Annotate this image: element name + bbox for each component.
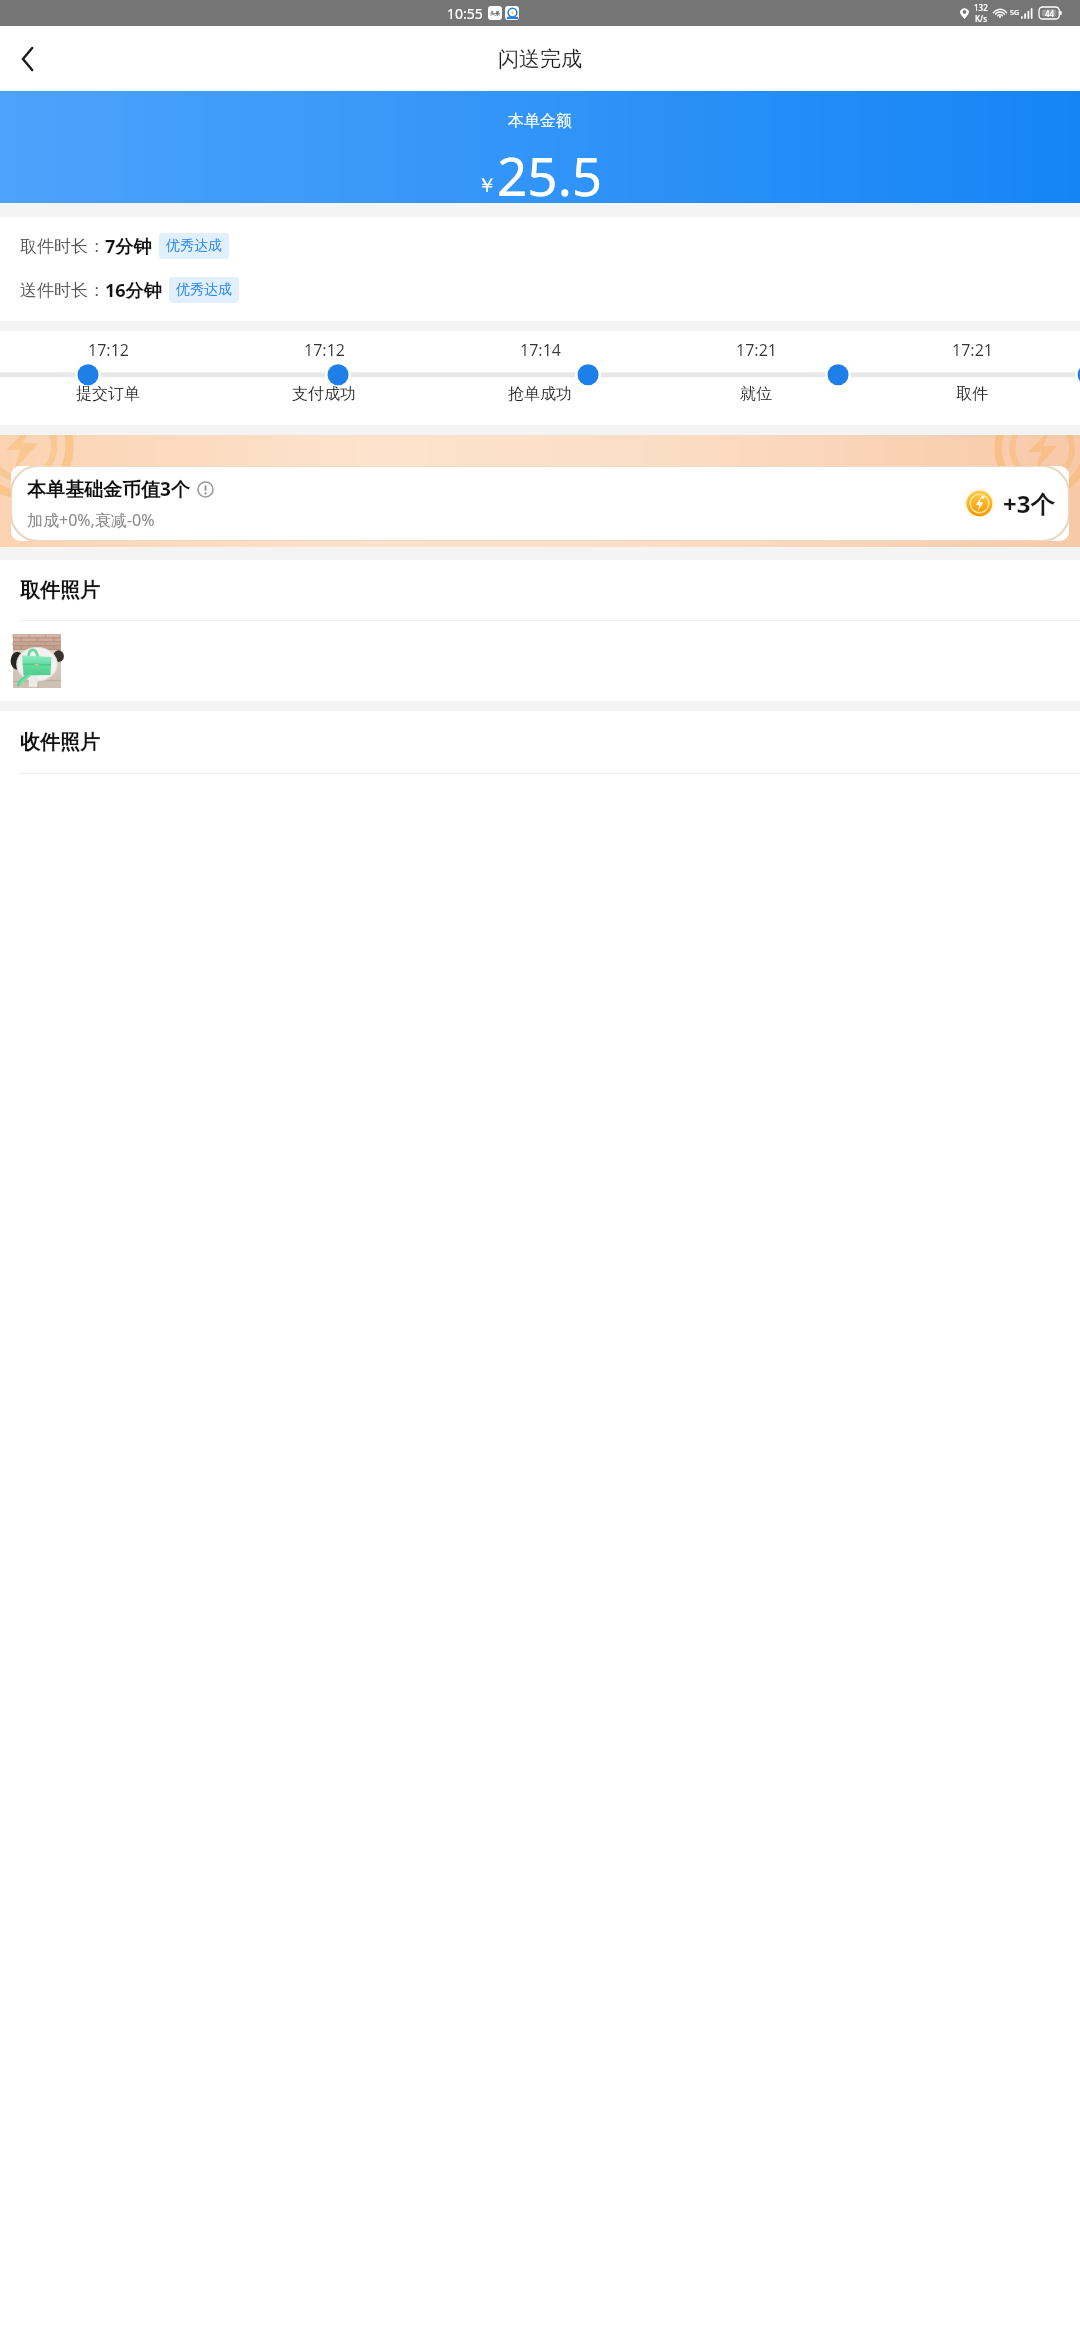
staticText: 本单金额: [508, 111, 572, 131]
button[interactable]: Pickup photo: [13, 634, 61, 688]
staticText: 就位: [740, 384, 772, 404]
staticText: 取件: [956, 384, 988, 404]
staticText: +3个: [1003, 487, 1055, 520]
staticText: 取件照片: [20, 578, 100, 603]
button[interactable]: 本单基础金币值3个: [11, 466, 1069, 541]
staticText: 抢单成功: [508, 384, 572, 404]
staticText: 收件照片: [20, 730, 100, 755]
staticText: 5G: [1010, 8, 1020, 18]
staticText: 取件时长：: [20, 236, 105, 257]
staticText: 17:12: [88, 339, 129, 361]
staticText: 44: [1045, 8, 1055, 19]
staticText: 闪送完成: [498, 46, 582, 72]
staticText: 7分钟: [105, 234, 152, 259]
staticText: 优秀达成: [176, 281, 232, 299]
staticText: 本单基础金币值3个: [27, 476, 190, 502]
staticText: K/s: [975, 13, 988, 24]
staticText: 25.5: [497, 139, 603, 203]
staticText: 10:55: [447, 4, 483, 23]
staticText: 17:21: [952, 339, 993, 361]
staticText: 优秀达成: [166, 237, 222, 255]
button[interactable]: 优秀达成: [159, 233, 229, 259]
staticText: 头条: [490, 10, 500, 16]
staticText: 17:12: [304, 339, 345, 361]
staticText: 132: [974, 2, 988, 13]
button[interactable]: Info: [197, 481, 214, 498]
staticText: 提交订单: [76, 384, 140, 404]
staticText: 16分钟: [105, 278, 162, 303]
staticText: 支付成功: [292, 384, 356, 404]
button[interactable]: Back: [0, 31, 56, 87]
staticText: 加成+0%,衰减-0%: [27, 509, 155, 531]
staticText: ￥: [477, 173, 497, 198]
button[interactable]: 优秀达成: [169, 277, 239, 303]
staticText: 17:21: [736, 339, 777, 361]
staticText: 17:14: [520, 339, 561, 361]
staticText: 送件时长：: [20, 280, 105, 301]
